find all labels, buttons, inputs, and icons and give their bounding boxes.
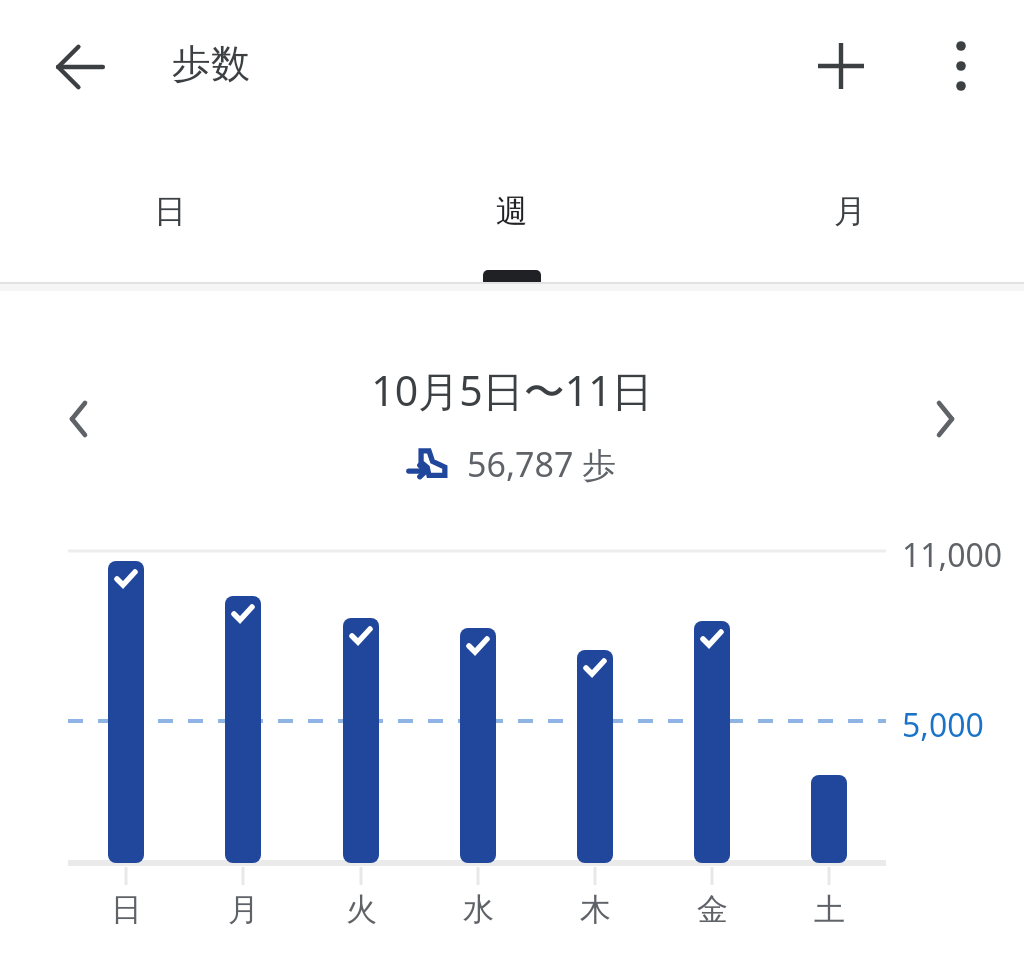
staticText: 10月5日〜11日 <box>371 362 653 418</box>
button[interactable]: Next week <box>915 389 975 449</box>
button[interactable]: 日 <box>60 160 280 282</box>
staticText: 水 <box>463 890 494 929</box>
staticText: 木 <box>580 890 611 929</box>
staticText: 56,787 歩 <box>467 441 617 487</box>
button[interactable]: 月 <box>740 160 960 282</box>
staticText: 歩数 <box>172 39 250 88</box>
staticText: 土 <box>814 890 845 929</box>
button[interactable]: Back <box>54 41 106 93</box>
staticText: 火 <box>346 890 377 929</box>
staticText: 11,000 <box>902 533 1003 577</box>
button[interactable]: More options <box>933 38 989 94</box>
button[interactable]: Add <box>813 38 869 94</box>
staticText: 月 <box>834 191 866 231</box>
staticText: 週 <box>496 191 528 231</box>
button[interactable]: Previous week <box>49 389 109 449</box>
staticText: 金 <box>697 890 728 929</box>
staticText: 月 <box>228 890 259 929</box>
staticText: 5,000 <box>902 703 984 747</box>
button[interactable]: 週 <box>402 160 622 282</box>
staticText: 日 <box>111 890 142 929</box>
staticText: 日 <box>154 191 186 231</box>
